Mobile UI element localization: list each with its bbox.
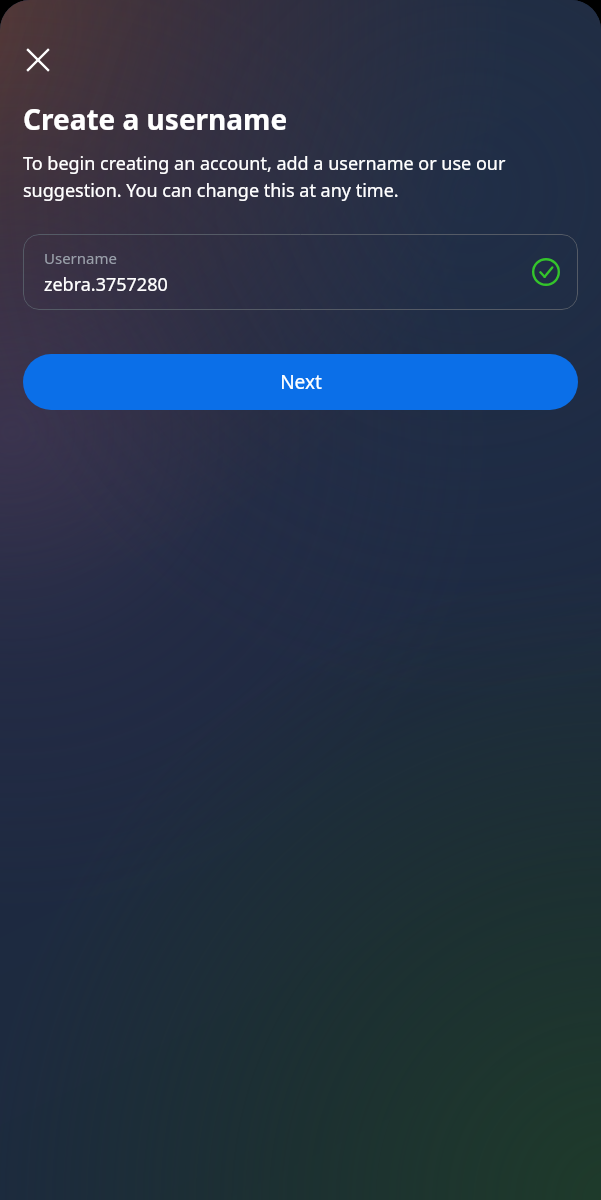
staticText: To begin creating an account, add a user… [23, 151, 583, 202]
staticText: Next [280, 369, 322, 395]
staticText: Create a username [23, 100, 288, 138]
button[interactable]: Next [23, 354, 578, 410]
button[interactable]: Username [23, 234, 578, 310]
staticText: Username [44, 248, 117, 268]
button[interactable]: Close [14, 36, 62, 84]
staticText: zebra.3757280 [44, 272, 168, 297]
